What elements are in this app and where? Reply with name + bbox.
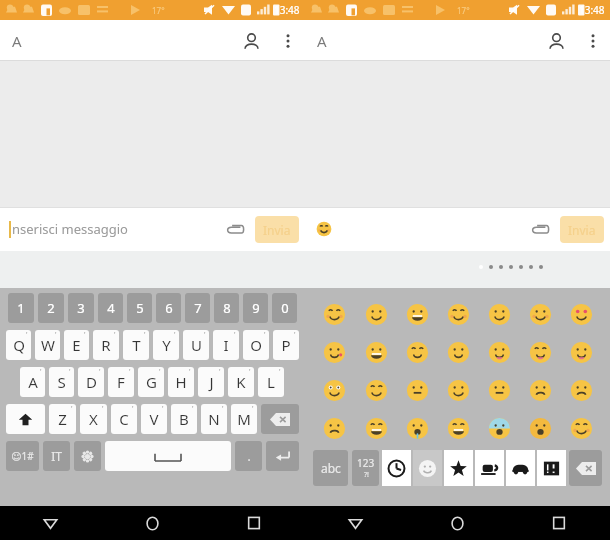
button[interactable]: Recents [508, 506, 610, 540]
button[interactable]: Backspace [569, 450, 602, 486]
button[interactable]: Category [413, 450, 442, 486]
button[interactable]: C [111, 404, 137, 434]
button[interactable]: X [80, 404, 107, 434]
button[interactable]: Enter [266, 441, 299, 471]
button[interactable]: 5 [127, 293, 152, 323]
button[interactable]: Emoji [355, 295, 397, 333]
button[interactable]: Category [475, 450, 504, 486]
button[interactable]: Emoji [355, 409, 397, 447]
staticText: . [247, 448, 251, 464]
button[interactable]: H [168, 367, 194, 397]
button[interactable]: Emoji [397, 333, 438, 371]
button[interactable]: Emoji [355, 371, 397, 409]
button[interactable]: 8 [214, 293, 239, 323]
button[interactable]: Category [382, 450, 411, 486]
button[interactable]: Emoji [438, 295, 479, 333]
button[interactable]: Emoji [438, 409, 479, 447]
button[interactable]: Emoji [561, 333, 602, 371]
button[interactable]: Emoji [520, 333, 561, 371]
button[interactable]: Emoji [561, 295, 602, 333]
button[interactable]: 9 [243, 293, 268, 323]
button[interactable]: O [243, 330, 269, 360]
button[interactable]: N [201, 404, 227, 434]
button[interactable]: T [123, 330, 149, 360]
button[interactable]: Emoji [313, 371, 355, 409]
staticText: C [119, 409, 129, 429]
button[interactable]: Emoji [561, 371, 602, 409]
button[interactable]: Emoji [438, 333, 479, 371]
button[interactable]: Emoji [397, 409, 438, 447]
button[interactable]: D [78, 367, 104, 397]
button[interactable]: Y [153, 330, 179, 360]
button[interactable]: Emoji [355, 333, 397, 371]
button[interactable]: Category [506, 450, 535, 486]
button[interactable]: Backspace [261, 404, 299, 434]
button[interactable]: Emoji [479, 333, 520, 371]
button[interactable]: Home [101, 506, 203, 540]
button[interactable]: Emoji [479, 295, 520, 333]
button[interactable]: Emoji [397, 371, 438, 409]
button[interactable]: Emoji [520, 371, 561, 409]
button[interactable]: Contacts [231, 21, 271, 61]
button[interactable]: J [198, 367, 224, 397]
staticText: ' [84, 330, 86, 340]
staticText: ' [162, 404, 164, 414]
button[interactable]: M [231, 404, 257, 434]
button[interactable]: 4 [98, 293, 123, 323]
button[interactable]: Home [406, 506, 508, 540]
button[interactable]: Emoji [520, 409, 561, 447]
button[interactable]: K [228, 367, 254, 397]
button[interactable]: Attach [522, 211, 558, 247]
button[interactable]: More options [576, 24, 610, 58]
button[interactable]: 3 [68, 293, 94, 323]
button[interactable]: Emoji [313, 333, 355, 371]
button[interactable]: Emoji [479, 409, 520, 447]
button[interactable]: V [141, 404, 167, 434]
staticText: D [86, 372, 97, 392]
button[interactable]: F [108, 367, 134, 397]
button[interactable]: Recents [203, 506, 305, 540]
button[interactable]: Emoji [438, 371, 479, 409]
button[interactable]: Emoji [313, 409, 355, 447]
button[interactable]: U [183, 330, 209, 360]
button[interactable]: G [138, 367, 164, 397]
button[interactable]: More options [271, 24, 305, 58]
button[interactable]: abc [313, 450, 348, 486]
button[interactable]: E [64, 330, 89, 360]
button[interactable]: Back [305, 506, 406, 540]
button[interactable]: ☺1# [6, 441, 39, 471]
button[interactable]: 7 [185, 293, 210, 323]
button[interactable]: Invia [255, 216, 299, 243]
button[interactable]: Space [105, 441, 231, 471]
button[interactable]: S [49, 367, 74, 397]
button[interactable]: B [171, 404, 197, 434]
button[interactable]: 1 [8, 293, 34, 323]
button[interactable]: R [93, 330, 119, 360]
button[interactable]: Shift [6, 404, 45, 434]
button[interactable]: Category [444, 450, 473, 486]
button[interactable]: Emoji [520, 295, 561, 333]
button[interactable]: 6 [156, 293, 181, 323]
button[interactable]: A [20, 367, 45, 397]
button[interactable]: Emoji [479, 371, 520, 409]
button[interactable]: Category [537, 450, 566, 486]
button[interactable]: Invia [560, 216, 604, 243]
button[interactable]: P [273, 330, 299, 360]
button[interactable]: Back [0, 506, 101, 540]
button[interactable]: Contacts [536, 21, 576, 61]
button[interactable]: Emoji [561, 409, 602, 447]
button[interactable]: . [235, 441, 262, 471]
button[interactable]: 0 [272, 293, 297, 323]
button[interactable]: Emoji [397, 295, 438, 333]
button[interactable]: L [258, 367, 284, 397]
button[interactable]: I [213, 330, 239, 360]
button[interactable]: 2 [38, 293, 64, 323]
button[interactable]: Q [6, 330, 31, 360]
button[interactable]: Emoji [313, 295, 355, 333]
button[interactable]: W [35, 330, 60, 360]
button[interactable]: Z [49, 404, 76, 434]
button[interactable]: Attach [217, 211, 253, 247]
button[interactable]: 123 [352, 450, 379, 486]
button[interactable]: Settings [74, 441, 101, 471]
button[interactable]: IT [43, 441, 70, 471]
